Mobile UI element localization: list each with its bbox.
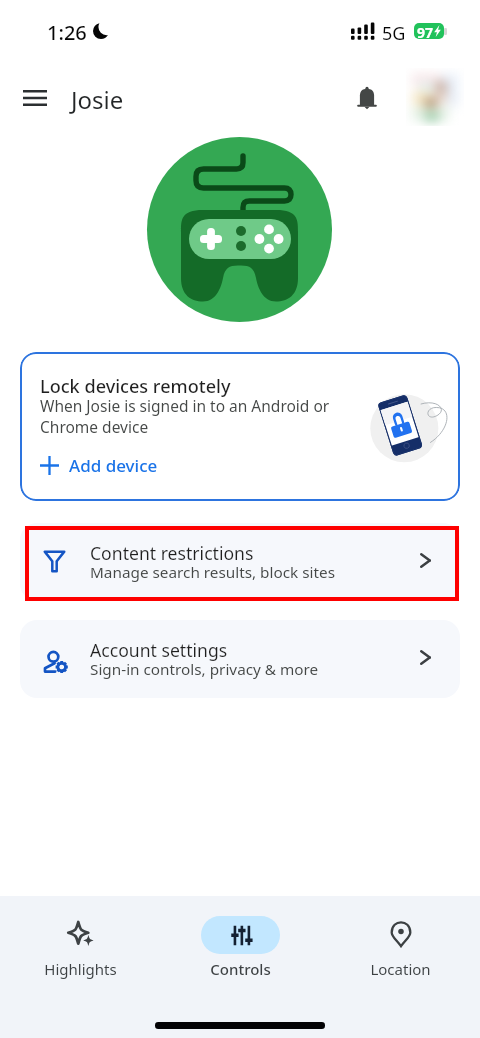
staticText: Highlights bbox=[44, 959, 117, 979]
staticText: Josie bbox=[71, 83, 124, 116]
button[interactable]: Location bbox=[320, 896, 480, 979]
staticText: Content restrictions bbox=[90, 541, 254, 565]
staticText: Location bbox=[370, 959, 431, 979]
staticText: Account settings bbox=[90, 638, 228, 662]
button[interactable]: Add device bbox=[36, 450, 162, 481]
staticText: 97 bbox=[417, 23, 434, 39]
button[interactable]: Controls bbox=[160, 896, 320, 979]
button[interactable]: Highlights bbox=[0, 896, 160, 979]
staticText: 1:26 bbox=[47, 19, 87, 46]
staticText: When Josie is signed in to an Android or… bbox=[40, 395, 330, 437]
staticText: Add device bbox=[69, 454, 158, 477]
button[interactable]: Account profile bbox=[406, 68, 464, 126]
button[interactable]: Notifications bbox=[344, 75, 389, 120]
button[interactable]: Content restrictions bbox=[20, 523, 460, 601]
staticText: Lock devices remotely bbox=[40, 374, 231, 399]
button[interactable]: Open navigation menu bbox=[12, 75, 57, 120]
button[interactable]: Account settings bbox=[20, 620, 460, 698]
staticText: Sign-in controls, privacy & more bbox=[90, 659, 319, 680]
staticText: 5G bbox=[382, 21, 406, 46]
staticText: Controls bbox=[210, 959, 271, 979]
staticText: Manage search results, block sites bbox=[90, 562, 335, 583]
